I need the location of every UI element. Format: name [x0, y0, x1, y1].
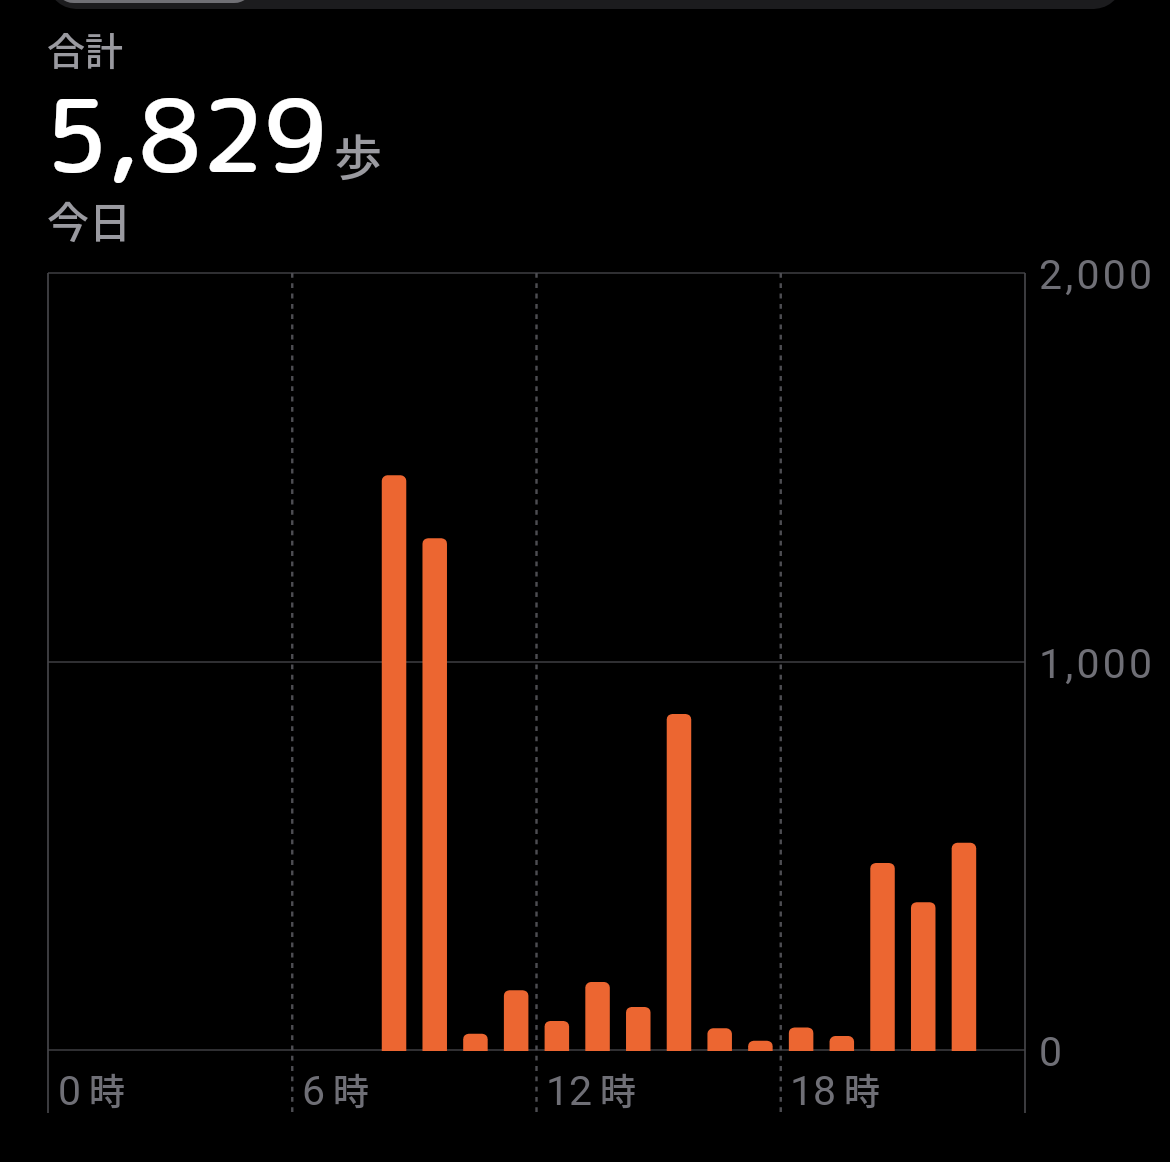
staticText: 歩: [334, 119, 383, 189]
staticText: 1,000: [1039, 640, 1156, 688]
staticText: 0: [58, 1067, 82, 1115]
staticText: 5,829: [45, 64, 328, 204]
staticText: 時: [89, 1063, 126, 1115]
staticText: 合計: [47, 21, 124, 76]
staticText: 0: [1039, 1028, 1066, 1076]
staticText: 6: [302, 1067, 326, 1115]
staticText: 12: [546, 1067, 593, 1115]
button[interactable]: Selected range: day: [54, 0, 254, 3]
staticText: 時: [844, 1063, 881, 1115]
staticText: 時: [600, 1063, 637, 1115]
staticText: 今日: [47, 189, 132, 250]
staticText: 2,000: [1039, 251, 1156, 299]
staticText: 時: [333, 1063, 370, 1115]
staticText: 18: [790, 1067, 837, 1115]
button[interactable]: Range selector: [48, 0, 1122, 9]
other: Hourly step chart: [0, 0, 1170, 1162]
